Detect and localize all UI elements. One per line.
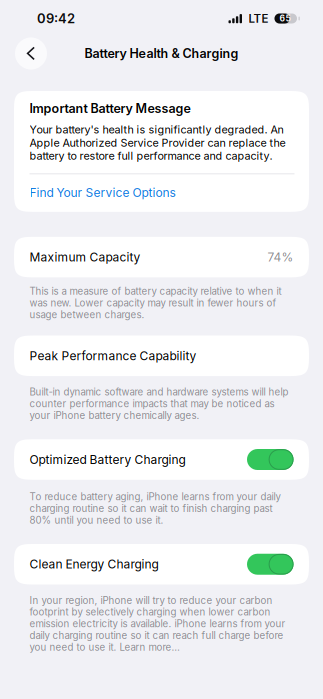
staticText: Important Battery Message — [29, 101, 190, 116]
staticText: To reduce battery aging, iPhone learns f… — [29, 491, 280, 526]
staticText: Clean Energy Charging — [29, 557, 158, 571]
staticText: Peak Performance Capability — [29, 348, 196, 363]
staticText: Maximum Capacity — [29, 250, 140, 264]
staticText: 09:42 — [37, 11, 75, 26]
staticText: In your region, iPhone will try to reduc… — [29, 594, 285, 653]
staticText: 74% — [267, 250, 293, 264]
staticText: LTE — [248, 11, 268, 25]
button[interactable]: Clean Energy Charging — [0, 544, 323, 584]
staticText: Built-in dynamic software and hardware s… — [29, 386, 288, 421]
staticText: Battery Health & Charging — [84, 46, 238, 61]
button[interactable]: Find Your Service Options — [29, 174, 294, 200]
staticText: Optimized Battery Charging — [29, 452, 185, 467]
button[interactable]: Back — [15, 37, 47, 69]
button[interactable]: Optimized Battery Charging — [0, 439, 323, 480]
staticText: Find Your Service Options — [29, 185, 175, 200]
staticText: Your battery's health is significantly d… — [29, 123, 285, 162]
staticText: This is a measure of battery capacity re… — [29, 285, 281, 320]
staticText: 65 — [279, 13, 290, 24]
